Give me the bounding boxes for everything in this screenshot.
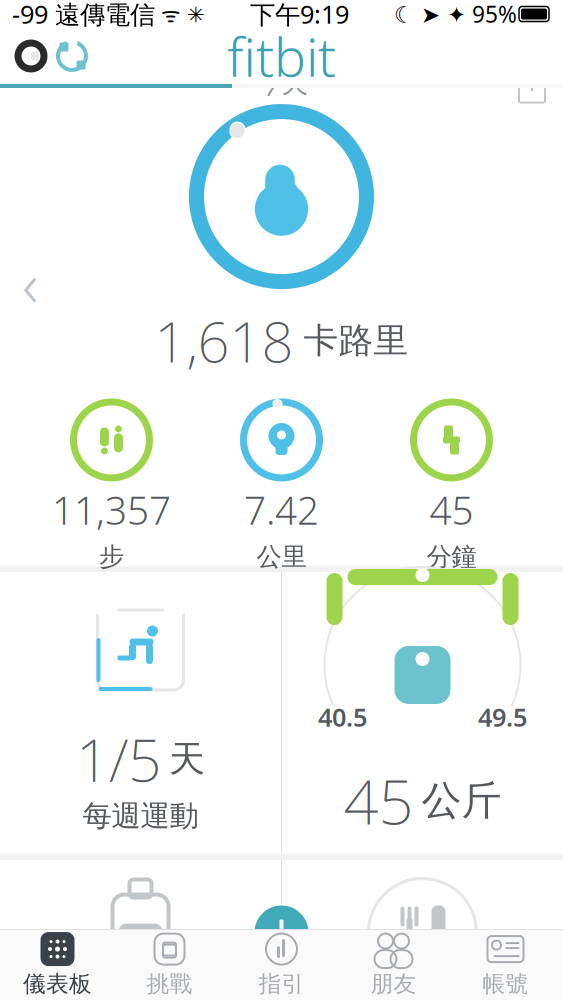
staticText: 卡路里	[303, 319, 408, 362]
button[interactable]: 40.5	[282, 572, 563, 854]
staticText: 45	[429, 484, 473, 535]
staticText: ᯤ ✳︎	[155, 0, 205, 28]
staticText: fitbit	[227, 21, 336, 91]
staticText: 公里	[256, 541, 306, 572]
staticText: 40.5	[318, 700, 367, 734]
staticText: 1,618	[154, 304, 293, 378]
staticText: 帳號	[482, 970, 528, 998]
button[interactable]: 挑戰	[113, 931, 225, 999]
button[interactable]: Sync tracker	[0, 28, 104, 84]
button[interactable]: Share	[501, 64, 563, 104]
button[interactable]: 45	[413, 402, 489, 572]
staticText: ‹	[22, 242, 38, 324]
staticText: 1/5	[76, 720, 161, 798]
staticText: 11,357	[52, 484, 171, 535]
staticText: 挑戰	[146, 970, 192, 998]
button[interactable]: 帳號	[449, 931, 561, 999]
button[interactable]: 儀表板	[1, 931, 113, 999]
staticText: 49.5	[478, 700, 527, 734]
staticText: 分鐘	[426, 541, 476, 572]
staticText: -99 遠傳電信	[12, 0, 155, 31]
button[interactable]: Log	[251, 902, 311, 962]
button[interactable]: 朋友	[337, 931, 449, 999]
button[interactable]	[181, 102, 381, 292]
button[interactable]: 7.42	[243, 402, 319, 572]
staticText: 儀表板	[23, 970, 92, 998]
button[interactable]: 11,357	[52, 402, 171, 572]
staticText: 今天	[254, 67, 308, 100]
staticText: 下午9:19	[250, 0, 349, 31]
staticText: 45	[343, 760, 413, 841]
button[interactable]: Food	[282, 860, 563, 1000]
button[interactable]: Previous day	[0, 253, 60, 313]
staticText: 天	[169, 737, 205, 781]
staticText: ☾ ➤ ✦ 95%	[394, 0, 517, 29]
button[interactable]: 指引	[225, 931, 337, 999]
button[interactable]: 1/5	[0, 572, 281, 854]
staticText: 指引	[258, 970, 304, 998]
staticText: 7.42	[244, 484, 319, 535]
staticText: 每週運動	[82, 798, 198, 834]
button[interactable]: Water	[0, 860, 281, 1000]
staticText: 朋友	[370, 970, 416, 998]
staticText: 公斤	[421, 776, 501, 825]
staticText: 步	[99, 541, 124, 572]
